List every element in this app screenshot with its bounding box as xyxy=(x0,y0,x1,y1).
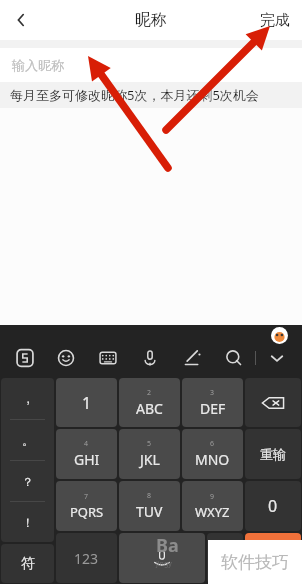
staticText: GHI xyxy=(74,450,100,469)
staticText: 5 xyxy=(147,439,152,449)
staticText: 软件技巧 xyxy=(221,552,289,573)
button[interactable]: Back xyxy=(0,0,42,40)
staticText: 2 xyxy=(147,388,152,398)
staticText: MNO xyxy=(195,450,230,469)
staticText: DEF xyxy=(200,399,226,418)
button[interactable]: Delete xyxy=(245,378,301,427)
staticText: 完成 xyxy=(260,11,290,30)
staticText: ， xyxy=(22,391,34,406)
staticText: 8 xyxy=(147,491,152,501)
staticText: PQRS xyxy=(70,503,104,521)
staticText: ？ xyxy=(22,474,34,489)
staticText: 1 xyxy=(82,392,92,414)
button[interactable]: 重输 xyxy=(245,429,301,479)
button[interactable]: Input method xyxy=(4,339,45,377)
staticText: jingy xyxy=(156,559,172,569)
staticText: 9 xyxy=(210,492,215,502)
staticText: 符 xyxy=(21,555,35,573)
staticText: 7 xyxy=(84,492,89,502)
staticText: 4 xyxy=(84,439,89,449)
button[interactable]: 6 xyxy=(182,429,243,479)
staticText: 重输 xyxy=(260,446,286,462)
button[interactable]: 符 xyxy=(1,544,54,583)
button[interactable]: Voice input xyxy=(129,339,171,377)
staticText: 3 xyxy=(210,388,215,398)
staticText: 昵称 xyxy=(135,10,167,30)
staticText: TUV xyxy=(136,502,163,521)
button[interactable]: 8 xyxy=(119,481,180,531)
button[interactable]: Collapse keyboard xyxy=(256,339,298,377)
button[interactable]: 完成 xyxy=(256,5,294,36)
button[interactable]: 3 xyxy=(182,378,243,427)
staticText: 输入昵称 xyxy=(12,57,64,73)
button[interactable]: Account xyxy=(271,327,288,344)
button[interactable]: 0 xyxy=(245,481,301,531)
button[interactable]: Keyboard layout xyxy=(87,339,129,377)
button[interactable]: 1 xyxy=(56,378,117,427)
button[interactable]: Handwriting xyxy=(171,339,213,377)
button[interactable]: ， xyxy=(1,378,54,542)
staticText: 搜索 xyxy=(260,550,286,566)
button[interactable]: 123 xyxy=(56,533,117,583)
staticText: 0 xyxy=(268,495,278,517)
staticText: 123 xyxy=(74,549,99,568)
button[interactable]: 输入昵称 xyxy=(0,48,302,82)
button[interactable]: 7 xyxy=(56,481,117,531)
staticText: 。 xyxy=(22,433,34,448)
button[interactable]: 2 xyxy=(119,378,180,427)
button[interactable]: 搜索 xyxy=(245,533,301,583)
staticText: 6 xyxy=(210,439,215,449)
staticText: WXYZ xyxy=(195,503,230,521)
button[interactable]: Voice input xyxy=(119,533,205,583)
button[interactable]: 5 xyxy=(119,429,180,479)
staticText: 中 xyxy=(219,550,232,566)
staticText: Ba xyxy=(156,533,179,558)
button[interactable]: Emoji xyxy=(45,339,87,377)
button[interactable]: Search xyxy=(213,339,255,377)
staticText: 每月至多可修改昵称5次，本月还剩5次机会 xyxy=(10,86,259,104)
button[interactable]: 4 xyxy=(56,429,117,479)
staticText: ABC xyxy=(136,399,163,418)
staticText: JKL xyxy=(140,450,160,469)
button[interactable]: 9 xyxy=(182,481,243,531)
staticText: ！ xyxy=(22,515,34,530)
button[interactable]: 中 xyxy=(207,533,243,583)
